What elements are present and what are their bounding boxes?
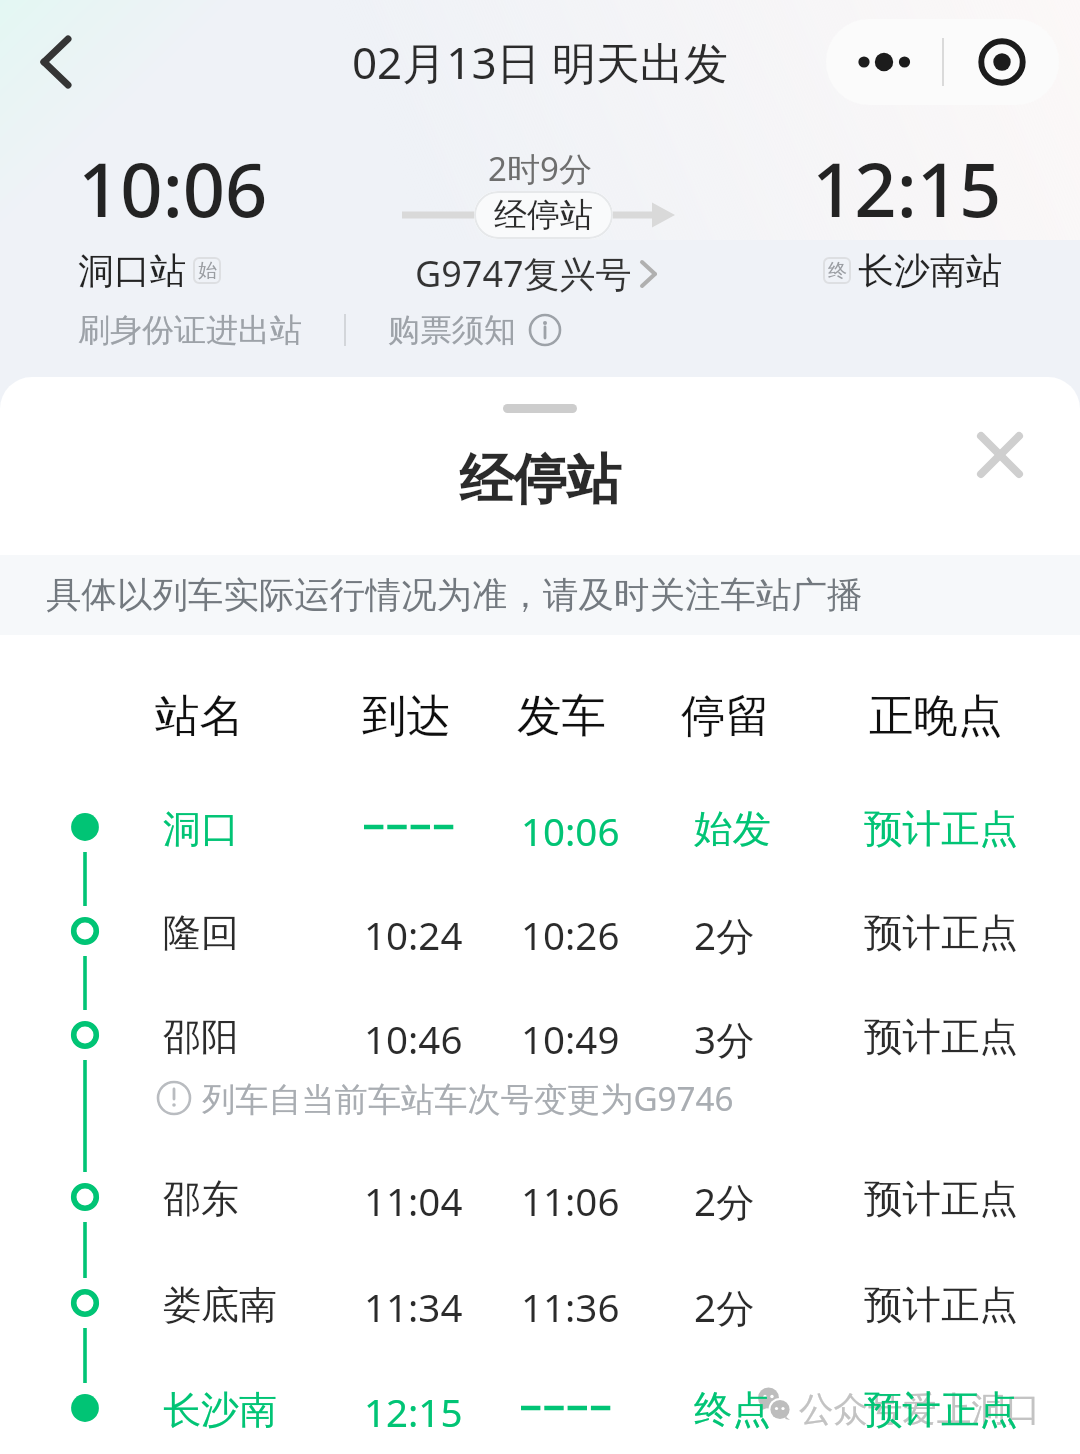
button[interactable]: 刷身份证进出站 — [78, 310, 302, 350]
staticText: 终点 — [694, 1386, 771, 1435]
staticText: 到达 — [362, 688, 451, 744]
staticText: 始 — [198, 259, 217, 283]
button[interactable]: Back — [8, 18, 96, 106]
staticText: 正晚点 — [869, 688, 1003, 744]
staticText: 长沙南 — [163, 1386, 277, 1434]
staticText: 11:04 — [364, 1175, 463, 1227]
button[interactable]: Close mini program — [943, 19, 1059, 105]
staticText: 预计正点 — [864, 1175, 1018, 1224]
staticText: 洞口站 — [78, 248, 186, 293]
staticText: 停留 — [681, 688, 770, 744]
button[interactable]: 娄底南 — [0, 1270, 1080, 1336]
button[interactable]: 洞口 — [0, 794, 1080, 860]
staticText: 10:46 — [364, 1013, 463, 1065]
staticText: 2分 — [694, 1281, 755, 1334]
staticText: 列车自当前车站车次号变更为G9746 — [202, 1076, 734, 1121]
staticText: 购票须知 — [388, 310, 516, 350]
staticText: 3分 — [694, 1013, 755, 1066]
staticText: 终 — [828, 259, 847, 283]
staticText: 经停站 — [494, 194, 593, 236]
button[interactable]: 邵阳 — [0, 1002, 1080, 1068]
staticText: 始发 — [694, 805, 771, 854]
button[interactable]: 经停站 — [474, 191, 613, 239]
staticText: 10:26 — [521, 909, 620, 961]
staticText: 12:15 — [812, 138, 1002, 239]
staticText: 经停站 — [0, 446, 1080, 514]
staticText: 隆回 — [163, 909, 239, 957]
staticText: 10:49 — [521, 1013, 620, 1065]
staticText: 2分 — [694, 1175, 755, 1228]
staticText: G9747复兴号 — [415, 249, 632, 298]
staticText: 预计正点 — [864, 1281, 1018, 1330]
staticText: 发车 — [517, 688, 606, 744]
staticText: 邵阳 — [163, 1013, 239, 1061]
staticText: 公众号爱上洞口 — [799, 1388, 1041, 1431]
staticText: 刷身份证进出站 — [78, 310, 302, 350]
staticText: 11:36 — [521, 1281, 620, 1333]
button[interactable]: 购票须知 — [388, 310, 562, 350]
staticText: 具体以列车实际运行情况为准，请及时关注车站广播 — [46, 573, 863, 618]
staticText: 洞口 — [163, 805, 239, 853]
staticText: 预计正点 — [864, 1013, 1018, 1062]
staticText: 预计正点 — [864, 805, 1018, 854]
staticText: 11:06 — [521, 1175, 620, 1227]
staticText: 预计正点 — [864, 909, 1018, 958]
staticText: 12:15 — [364, 1386, 463, 1438]
button[interactable]: 邵东 — [0, 1164, 1080, 1230]
staticText: 10:24 — [364, 909, 463, 961]
button[interactable]: Close — [960, 415, 1040, 495]
staticText: 站名 — [155, 688, 244, 744]
staticText: 02月13日 明天出发 — [0, 32, 1080, 92]
button[interactable]: 长沙南 — [0, 1375, 1080, 1441]
staticText: 长沙南站 — [858, 248, 1002, 293]
staticText: 11:34 — [364, 1281, 463, 1333]
staticText: 娄底南 — [163, 1281, 277, 1329]
staticText: 预计正点 — [864, 1386, 1018, 1435]
staticText: 10:06 — [521, 805, 620, 857]
staticText: 2分 — [694, 909, 755, 962]
staticText: 邵东 — [163, 1175, 239, 1223]
staticText: 2时9分 — [340, 146, 740, 191]
staticText: 10:06 — [78, 138, 268, 239]
button[interactable]: More options — [826, 19, 943, 105]
button[interactable]: 隆回 — [0, 898, 1080, 964]
